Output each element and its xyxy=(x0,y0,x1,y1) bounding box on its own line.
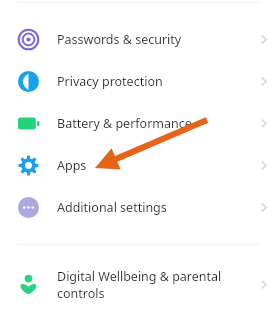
other: Additional settings xyxy=(18,197,39,218)
button[interactable]: Battery and performance xyxy=(0,102,279,144)
button[interactable]: Additional settings xyxy=(0,186,279,228)
staticText: Digital Wellbeing & parental controls xyxy=(57,268,247,301)
other: Passwords and security xyxy=(18,29,39,50)
staticText: Passwords & security xyxy=(57,31,247,48)
other: Digital Wellbeing and parental controls xyxy=(18,274,39,295)
staticText: Apps xyxy=(57,157,247,174)
staticText: Additional settings xyxy=(57,199,247,216)
button[interactable]: Apps xyxy=(0,144,279,186)
staticText: Privacy protection xyxy=(57,73,247,90)
staticText: Battery & performance xyxy=(57,115,247,132)
button[interactable]: Passwords and security xyxy=(0,18,279,60)
button[interactable]: Privacy protection xyxy=(0,60,279,102)
other: Apps xyxy=(18,155,39,176)
other: Battery and performance xyxy=(18,113,39,134)
other: Privacy protection xyxy=(18,71,39,92)
button[interactable]: Digital Wellbeing and parental controls xyxy=(0,264,279,304)
